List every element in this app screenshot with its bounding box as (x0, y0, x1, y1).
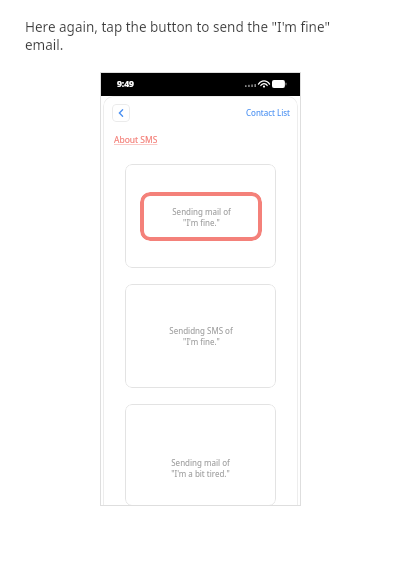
staticText: Sendidng SMS of (169, 325, 233, 336)
staticText: "I'm fine." (183, 336, 220, 347)
staticText: Contact List (246, 107, 290, 118)
staticText: Here again, tap the button to send the "… (25, 18, 330, 36)
button[interactable]: Sending mail of (140, 192, 262, 241)
staticText: Sending mail of (172, 206, 231, 217)
button[interactable]: Sendidng SMS of (125, 284, 276, 388)
staticText: 9:49 (117, 78, 134, 90)
button[interactable]: About SMS (112, 132, 160, 148)
button[interactable]: Contact List (238, 102, 298, 123)
staticText: Sending mail of (171, 457, 230, 468)
staticText: "I'm a bit tired." (171, 468, 230, 479)
staticText: email. (25, 36, 64, 54)
button[interactable]: Sending mail of (125, 404, 276, 506)
staticText: About SMS (114, 134, 158, 146)
button[interactable]: Back (112, 104, 130, 122)
staticText: "I'm fine." (183, 217, 220, 228)
